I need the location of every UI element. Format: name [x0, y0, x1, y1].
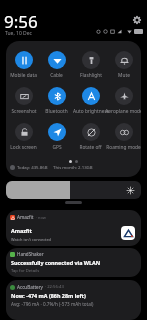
staticText: Today: 435.86B	[17, 164, 48, 170]
staticText: Flashlight	[80, 72, 102, 78]
button[interactable]: Settings	[131, 14, 143, 26]
staticText: Auto brightness	[73, 108, 109, 114]
staticText: HandShaker	[17, 251, 44, 257]
staticText: Lock screen	[10, 144, 37, 150]
staticText: 9:56	[4, 10, 38, 33]
button[interactable]: Lock screen	[7, 123, 40, 150]
staticText: Tap for Details	[11, 268, 40, 274]
button[interactable]: GPS	[40, 123, 73, 150]
button[interactable]: Rotate off	[74, 123, 107, 150]
staticText: AccuBattery	[17, 284, 43, 290]
button[interactable]: Cable	[40, 51, 73, 78]
button[interactable]: Flashlight	[74, 51, 107, 78]
button[interactable]: Auto brightness	[74, 87, 107, 114]
button[interactable]: Screenshot	[7, 87, 40, 114]
staticText: Amazfit	[11, 227, 32, 234]
button[interactable]: Brightness	[6, 181, 141, 199]
staticText: Screenshot	[11, 108, 37, 114]
staticText: Tue, 10 Dec	[5, 30, 32, 37]
staticText: · 22:56:43	[45, 284, 64, 290]
staticText: Amazfit	[17, 214, 34, 220]
button[interactable]: Mute	[107, 51, 140, 78]
staticText: This month: 2.13GB	[53, 164, 93, 170]
button[interactable]: AccuBattery	[6, 280, 141, 320]
button[interactable]: Mobile data	[7, 51, 40, 78]
staticText: Avg: -796 mA · 0.7%/h (-573 mAh total)	[11, 301, 94, 307]
staticText: GPS	[52, 144, 62, 150]
staticText: Successfully connected via WLAN	[11, 259, 101, 266]
staticText: Aeroplane mode	[105, 108, 141, 114]
staticText: Bluetooth	[45, 108, 68, 114]
button[interactable]: Roaming mode	[107, 123, 140, 150]
staticText: Watch isn't connected	[11, 237, 52, 242]
button[interactable]: HandShaker	[6, 248, 141, 277]
staticText: Rotate off	[79, 144, 102, 150]
button[interactable]: Amazfit	[6, 210, 141, 246]
staticText: Cable	[50, 72, 63, 78]
staticText: Now: -474 mA (86h 28m left)	[11, 292, 86, 299]
button[interactable]: Aeroplane mode	[107, 87, 140, 114]
staticText: Mute	[118, 72, 130, 78]
staticText: Roaming mode	[106, 144, 141, 150]
staticText: · now	[36, 215, 46, 220]
staticText: Mobile data	[10, 72, 37, 78]
button[interactable]: Bluetooth	[40, 87, 73, 114]
